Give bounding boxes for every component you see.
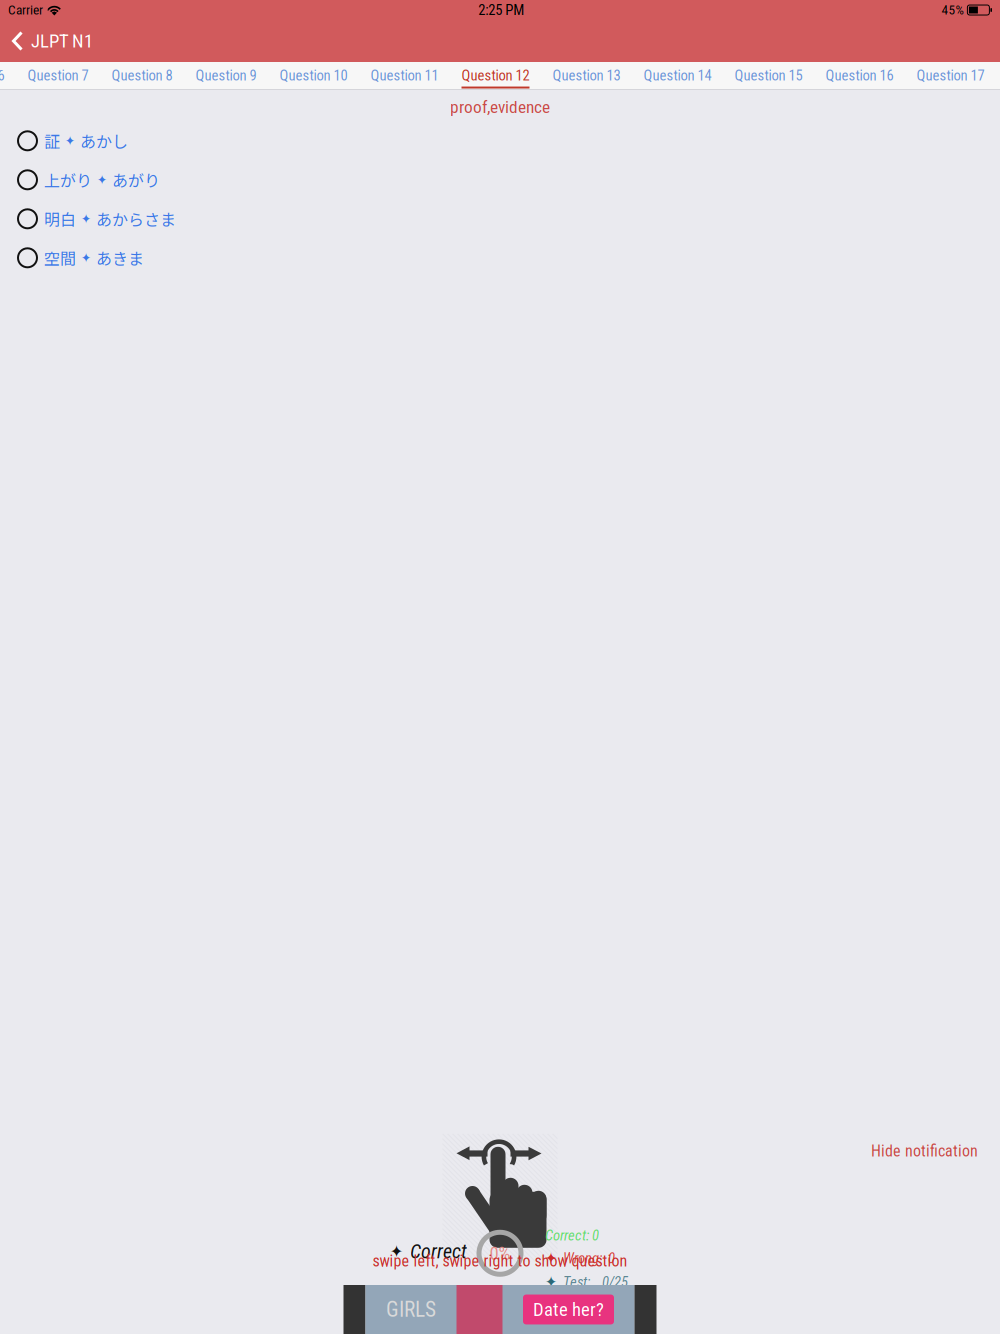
- button[interactable]: Question 8: [100, 62, 184, 88]
- button[interactable]: Question 17: [905, 62, 996, 88]
- staticText: 45%: [941, 2, 963, 18]
- staticText: ✦: [97, 172, 107, 188]
- staticText: Question 8: [111, 67, 172, 84]
- staticText: 上がり: [44, 168, 92, 191]
- staticText: Question 17: [916, 67, 984, 84]
- staticText: Question 15: [734, 67, 802, 84]
- staticText: 2:25 PM: [478, 1, 524, 19]
- button[interactable]: Question 16: [814, 62, 905, 88]
- button[interactable]: 明白: [0, 199, 1000, 238]
- staticText: Question 9: [195, 67, 256, 84]
- staticText: Question 12: [461, 67, 529, 84]
- button[interactable]: Hide notification: [865, 1137, 984, 1166]
- staticText: Question 6: [0, 67, 4, 84]
- staticText: Question 7: [27, 67, 88, 84]
- staticText: あからさま: [96, 207, 176, 230]
- staticText: 証: [44, 129, 60, 152]
- staticText: JLPT N1: [31, 30, 93, 52]
- staticText: ✦: [545, 1273, 557, 1291]
- staticText: Question 14: [643, 67, 711, 84]
- staticText: ✦: [81, 211, 91, 227]
- staticText: Hide notification: [871, 1142, 978, 1161]
- staticText: ✦: [545, 1249, 557, 1268]
- staticText: Question 13: [552, 67, 620, 84]
- staticText: あかし: [80, 129, 128, 152]
- staticText: Carrier: [8, 2, 43, 18]
- staticText: Correct: 0: [545, 1227, 599, 1244]
- staticText: swipe left, swipe right to show question: [372, 1252, 627, 1271]
- button[interactable]: Advertisement: [343, 1285, 656, 1334]
- button[interactable]: 証: [0, 121, 1000, 160]
- staticText: proof,evidence: [450, 97, 550, 117]
- staticText: あがり: [112, 168, 160, 191]
- staticText: Wrong: 0: [563, 1250, 615, 1267]
- button[interactable]: Question 11: [359, 62, 450, 88]
- staticText: Question 10: [279, 67, 347, 84]
- staticText: Test: 0/25: [563, 1273, 628, 1290]
- staticText: Date her?: [533, 1299, 604, 1320]
- button[interactable]: Question 9: [184, 62, 268, 88]
- staticText: ✦: [65, 133, 75, 149]
- staticText: 明白: [44, 207, 76, 230]
- button[interactable]: Question 15: [723, 62, 814, 88]
- staticText: ✦: [81, 250, 91, 266]
- staticText: Question 11: [370, 67, 438, 84]
- button[interactable]: Question 6: [0, 62, 16, 88]
- button[interactable]: 上がり: [0, 160, 1000, 199]
- button[interactable]: Question 12: [450, 62, 541, 88]
- button[interactable]: JLPT N1: [0, 20, 101, 62]
- button[interactable]: Question 7: [16, 62, 100, 88]
- button[interactable]: Question 13: [541, 62, 632, 88]
- button[interactable]: Question 10: [268, 62, 359, 88]
- staticText: あきま: [96, 246, 144, 269]
- button[interactable]: Question 14: [632, 62, 723, 88]
- button[interactable]: 空間: [0, 238, 1000, 277]
- staticText: GIRLS: [386, 1297, 436, 1322]
- staticText: Question 16: [825, 67, 893, 84]
- staticText: Correct: [410, 1240, 467, 1263]
- staticText: 空間: [44, 246, 76, 269]
- staticText: ✦: [390, 1241, 403, 1262]
- staticText: 0%: [489, 1242, 510, 1264]
